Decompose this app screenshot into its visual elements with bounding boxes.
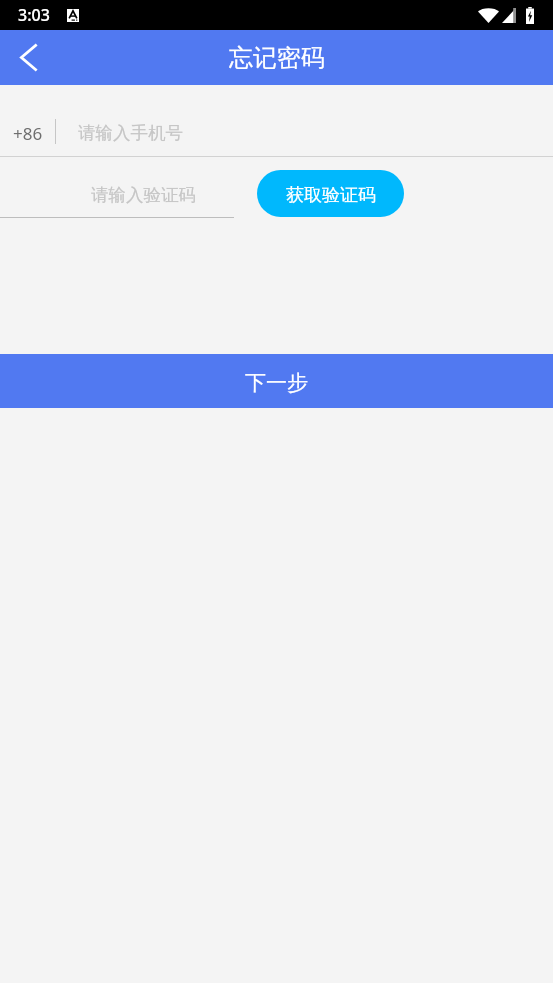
staticText: 忘记密码 [229, 43, 325, 73]
button[interactable]: Back [0, 30, 55, 85]
button[interactable]: +86 [0, 85, 553, 157]
staticText: 获取验证码 [286, 184, 376, 207]
button[interactable]: 获取验证码 [257, 170, 404, 217]
staticText: 3:03 [18, 4, 50, 26]
button[interactable]: 下一步 [0, 354, 553, 408]
staticText: 请输入手机号 [78, 122, 183, 144]
staticText: 请输入验证码 [91, 184, 196, 206]
staticText: 下一步 [245, 370, 308, 396]
button[interactable]: 请输入验证码 [0, 157, 234, 220]
staticText: +86 [13, 122, 43, 145]
